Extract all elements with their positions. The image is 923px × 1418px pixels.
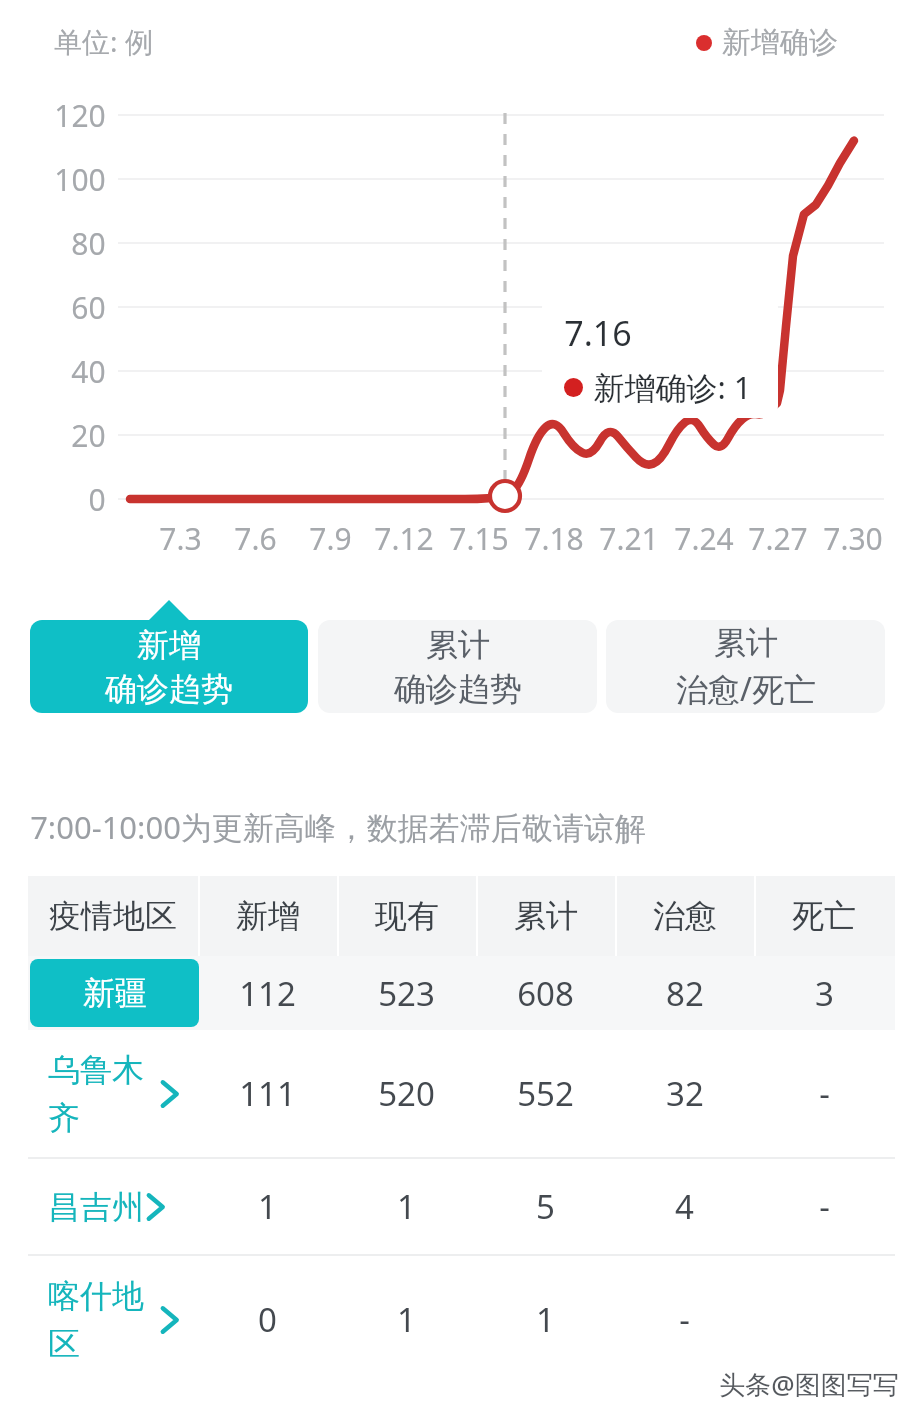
staticText: 552 <box>517 1071 574 1116</box>
staticText: 确诊趋势 <box>105 669 233 709</box>
staticText: 520 <box>378 1071 435 1116</box>
staticText: 80 <box>71 223 106 263</box>
staticText: 1 <box>397 1297 416 1342</box>
staticText: 新增 <box>236 896 300 936</box>
staticText: 7.6 <box>234 518 277 559</box>
other: 查看详情 <box>144 1186 168 1228</box>
staticText: 7.21 <box>599 518 659 559</box>
staticText: 4 <box>675 1184 694 1229</box>
staticText: 治愈 <box>653 896 717 936</box>
button[interactable]: 新疆 <box>28 956 895 1030</box>
button[interactable]: 新增 <box>30 600 308 713</box>
staticText: 1 <box>397 1184 416 1229</box>
staticText: 新增确诊 <box>722 24 838 61</box>
staticText: - <box>679 1297 690 1342</box>
staticText: 累计 <box>514 896 578 936</box>
button[interactable]: 累计 <box>318 620 597 713</box>
staticText: 治愈/死亡 <box>676 667 816 711</box>
staticText: 100 <box>54 159 106 199</box>
staticText: 确诊趋势 <box>394 669 522 709</box>
staticText: 7.24 <box>674 518 734 559</box>
staticText: 7.12 <box>374 518 434 559</box>
staticText: 5 <box>536 1184 555 1229</box>
staticText: 7.27 <box>748 518 808 559</box>
staticText: 82 <box>666 971 704 1016</box>
staticText: 32 <box>666 1071 704 1116</box>
staticText: 现有 <box>375 896 439 936</box>
staticText: 60 <box>71 287 106 327</box>
staticText: 0 <box>88 479 106 519</box>
other: 查看详情 <box>158 1073 182 1115</box>
staticText: 死亡 <box>792 896 856 936</box>
other: 查看详情 <box>158 1299 182 1341</box>
staticText: 523 <box>378 971 435 1016</box>
staticText: 新疆 <box>83 973 147 1013</box>
staticText: 疫情地区 <box>49 896 177 936</box>
staticText: 608 <box>517 971 574 1016</box>
staticText: 1 <box>536 1297 555 1342</box>
staticText: 7.3 <box>159 518 202 559</box>
button[interactable]: 喀什地 <box>28 1256 895 1383</box>
staticText: 新增 <box>137 625 201 665</box>
staticText: 120 <box>54 95 106 135</box>
staticText: 喀什地 <box>48 1276 144 1316</box>
button[interactable]: 乌鲁木 <box>28 1030 895 1157</box>
staticText: 0 <box>258 1297 277 1342</box>
staticText: 7.18 <box>524 518 584 559</box>
staticText: 7.30 <box>823 518 883 559</box>
staticText: 7.9 <box>309 518 352 559</box>
staticText: 111 <box>239 1071 296 1116</box>
staticText: 齐 <box>48 1098 80 1138</box>
staticText: 累计 <box>714 623 778 663</box>
staticText: 1 <box>258 1184 277 1229</box>
staticText: 头条@图图写写 <box>719 1366 899 1402</box>
staticText: 3 <box>815 971 834 1016</box>
staticText: 7.16 <box>564 310 632 356</box>
staticText: 昌吉州 <box>48 1187 144 1227</box>
staticText: - <box>819 1184 830 1229</box>
staticText: 单位: 例 <box>54 22 153 60</box>
staticText: 20 <box>71 415 106 455</box>
staticText: 112 <box>239 971 296 1016</box>
staticText: 新增确诊: 1 <box>593 366 752 408</box>
staticText: 累计 <box>426 625 490 665</box>
staticText: 区 <box>48 1324 80 1364</box>
staticText: 7:00-10:00为更新高峰，数据若滞后敬请谅解 <box>30 806 646 848</box>
button[interactable]: 昌吉州 <box>28 1159 895 1254</box>
staticText: 乌鲁木 <box>48 1050 144 1090</box>
staticText: 7.15 <box>449 518 509 559</box>
staticText: - <box>819 1071 830 1116</box>
button[interactable]: 累计 <box>606 620 885 713</box>
staticText: 40 <box>71 351 106 391</box>
